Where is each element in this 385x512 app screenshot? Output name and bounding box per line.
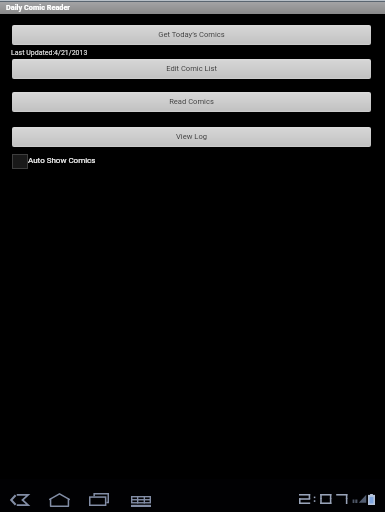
button[interactable]: Home	[45, 488, 76, 510]
button[interactable]: View Log	[12, 127, 371, 147]
button[interactable]: Auto Show Comics	[12, 154, 96, 169]
button[interactable]: Recent apps	[85, 488, 116, 510]
staticText: Edit Comic List	[166, 64, 217, 73]
button[interactable]: Keyboard	[126, 488, 157, 510]
button[interactable]: Get Today’s Comics	[12, 25, 371, 45]
staticText: Get Today’s Comics	[158, 30, 225, 39]
staticText: Read Comics	[169, 97, 214, 106]
staticText: Auto Show Comics	[28, 156, 96, 165]
button[interactable]: Read Comics	[12, 92, 371, 112]
staticText: View Log	[176, 132, 207, 141]
button[interactable]: Back	[4, 488, 35, 510]
button[interactable]: Edit Comic List	[12, 59, 371, 79]
staticText: Last Updated:4/21/2013	[11, 49, 88, 57]
staticText: Daily Comic Reader	[6, 3, 71, 12]
